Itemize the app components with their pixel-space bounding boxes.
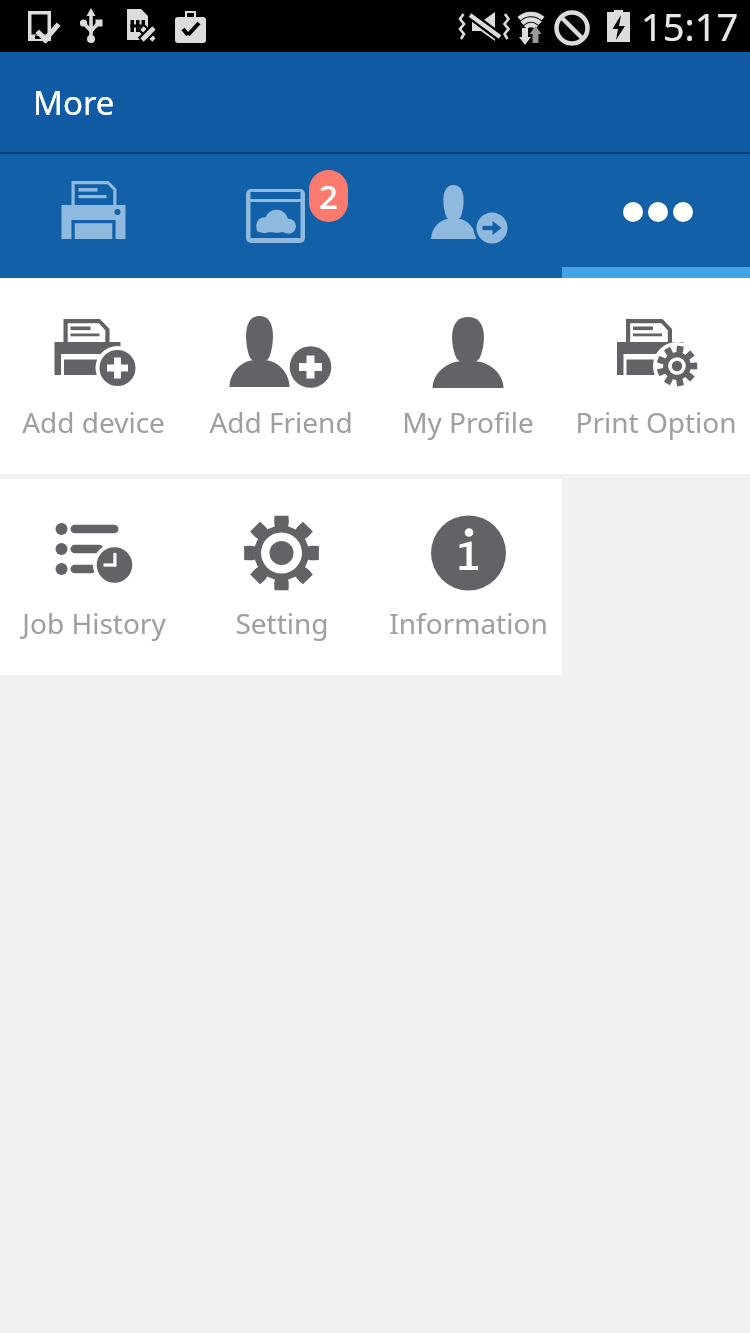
staticText: 2 [319,174,338,219]
staticText: More [33,80,115,125]
button[interactable]: Setting [188,479,375,675]
button[interactable]: My Profile [374,278,562,474]
button[interactable]: Add Friend [187,278,374,474]
button[interactable]: More [562,154,750,278]
button[interactable]: Job History [0,479,188,675]
button[interactable]: Cloud print jobs [187,154,374,278]
button[interactable]: Add device [0,278,187,474]
staticText: My Profile [402,403,534,441]
staticText: Job History [22,604,166,642]
staticText: Add device [22,403,165,441]
staticText: Information [389,604,548,642]
staticText: Setting [235,604,329,642]
button[interactable]: Printers [0,154,187,278]
staticText: Print Option [575,403,737,441]
button[interactable]: Print Option [562,278,750,474]
staticText: 15:17 [641,0,739,52]
staticText: Add Friend [209,403,353,441]
button[interactable]: Add user [374,154,562,278]
button[interactable]: Information [375,479,562,675]
